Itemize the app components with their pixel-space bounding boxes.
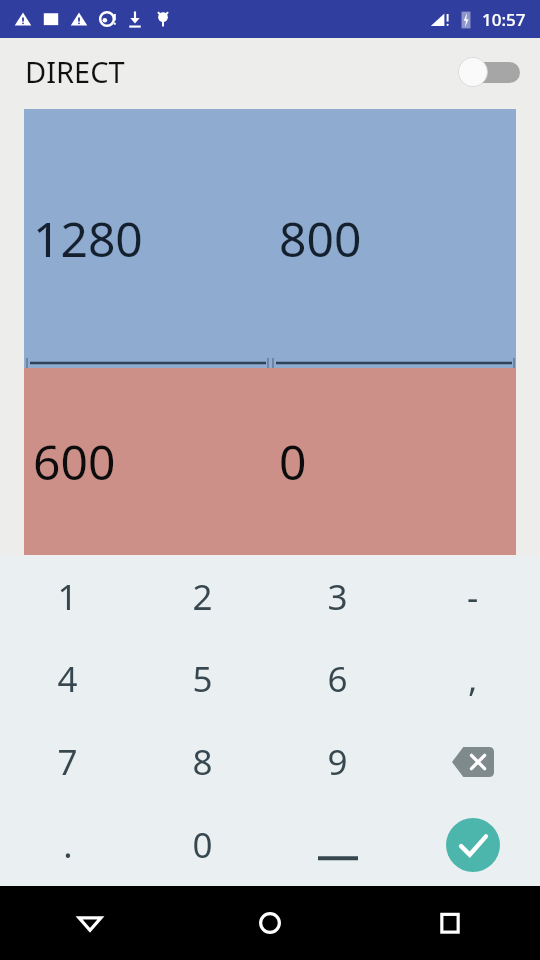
button[interactable]: 2	[135, 556, 270, 638]
staticText: 0	[192, 821, 213, 869]
staticText: 10:57	[482, 8, 526, 31]
button[interactable]: 4	[0, 638, 135, 720]
button[interactable]: .	[0, 803, 135, 886]
button[interactable]: 8	[135, 720, 270, 803]
button[interactable]: 6	[270, 638, 405, 720]
button[interactable]: 800	[270, 109, 516, 368]
staticText: 600	[33, 429, 116, 494]
button[interactable]: 3	[270, 556, 405, 638]
button[interactable]	[270, 803, 405, 886]
staticText: -	[467, 573, 479, 621]
button[interactable]: 0	[270, 368, 516, 555]
button[interactable]: 5	[135, 638, 270, 720]
staticText: 1280	[33, 206, 143, 271]
button[interactable]: Home	[180, 886, 360, 960]
staticText: 800	[279, 206, 362, 271]
staticText: 7	[57, 738, 78, 786]
button[interactable]: Back	[0, 886, 180, 960]
button[interactable]: 7	[0, 720, 135, 803]
button[interactable]: Direct toggle	[458, 54, 520, 90]
staticText: .	[63, 821, 73, 869]
button[interactable]: Recent apps	[360, 886, 540, 960]
button[interactable]: 600	[24, 368, 270, 555]
staticText: 8	[192, 738, 213, 786]
button[interactable]: Backspace	[405, 720, 540, 803]
staticText: 0	[279, 429, 307, 494]
staticText: 1	[57, 573, 78, 621]
button[interactable]: Confirm	[405, 803, 540, 886]
staticText: 3	[327, 573, 348, 621]
staticText: 4	[57, 655, 78, 703]
staticText: 6	[327, 655, 348, 703]
staticText: ,	[468, 655, 478, 703]
button[interactable]: 9	[270, 720, 405, 803]
staticText: DIRECT	[25, 52, 125, 91]
button[interactable]: 1280	[24, 109, 270, 368]
staticText: 2	[192, 573, 213, 621]
staticText: 5	[192, 655, 213, 703]
button[interactable]: 0	[135, 803, 270, 886]
button[interactable]: 1	[0, 556, 135, 638]
button[interactable]: ,	[405, 638, 540, 720]
button[interactable]: -	[405, 556, 540, 638]
staticText: 9	[327, 738, 348, 786]
